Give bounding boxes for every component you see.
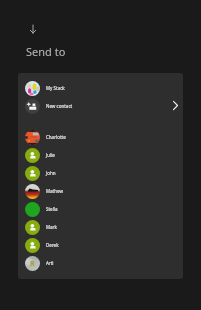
- button[interactable]: R: [18, 254, 183, 272]
- staticText: Charlotte: [46, 134, 66, 140]
- button[interactable]: Charlotte: [18, 128, 183, 146]
- staticText: New contact: [46, 103, 73, 109]
- staticText: Mathew: [46, 188, 63, 194]
- staticText: Julie: [46, 152, 55, 158]
- button[interactable]: Derek: [18, 236, 183, 254]
- staticText: Mark: [46, 224, 57, 230]
- button[interactable]: Collapse: [23, 20, 43, 40]
- staticText: Arti: [46, 260, 54, 266]
- staticText: John: [46, 170, 56, 176]
- staticText: R: [30, 259, 35, 269]
- button[interactable]: New contact: [18, 97, 183, 115]
- staticText: Derek: [46, 242, 59, 248]
- staticText: My Stack: [46, 85, 65, 91]
- button[interactable]: John: [18, 164, 183, 182]
- button[interactable]: Stella: [18, 200, 183, 218]
- button[interactable]: My Stack: [18, 79, 183, 97]
- button[interactable]: Julie: [18, 146, 183, 164]
- button[interactable]: Mathew: [18, 182, 183, 200]
- staticText: Stella: [46, 206, 58, 212]
- staticText: Send to: [26, 44, 66, 59]
- button[interactable]: Mark: [18, 218, 183, 236]
